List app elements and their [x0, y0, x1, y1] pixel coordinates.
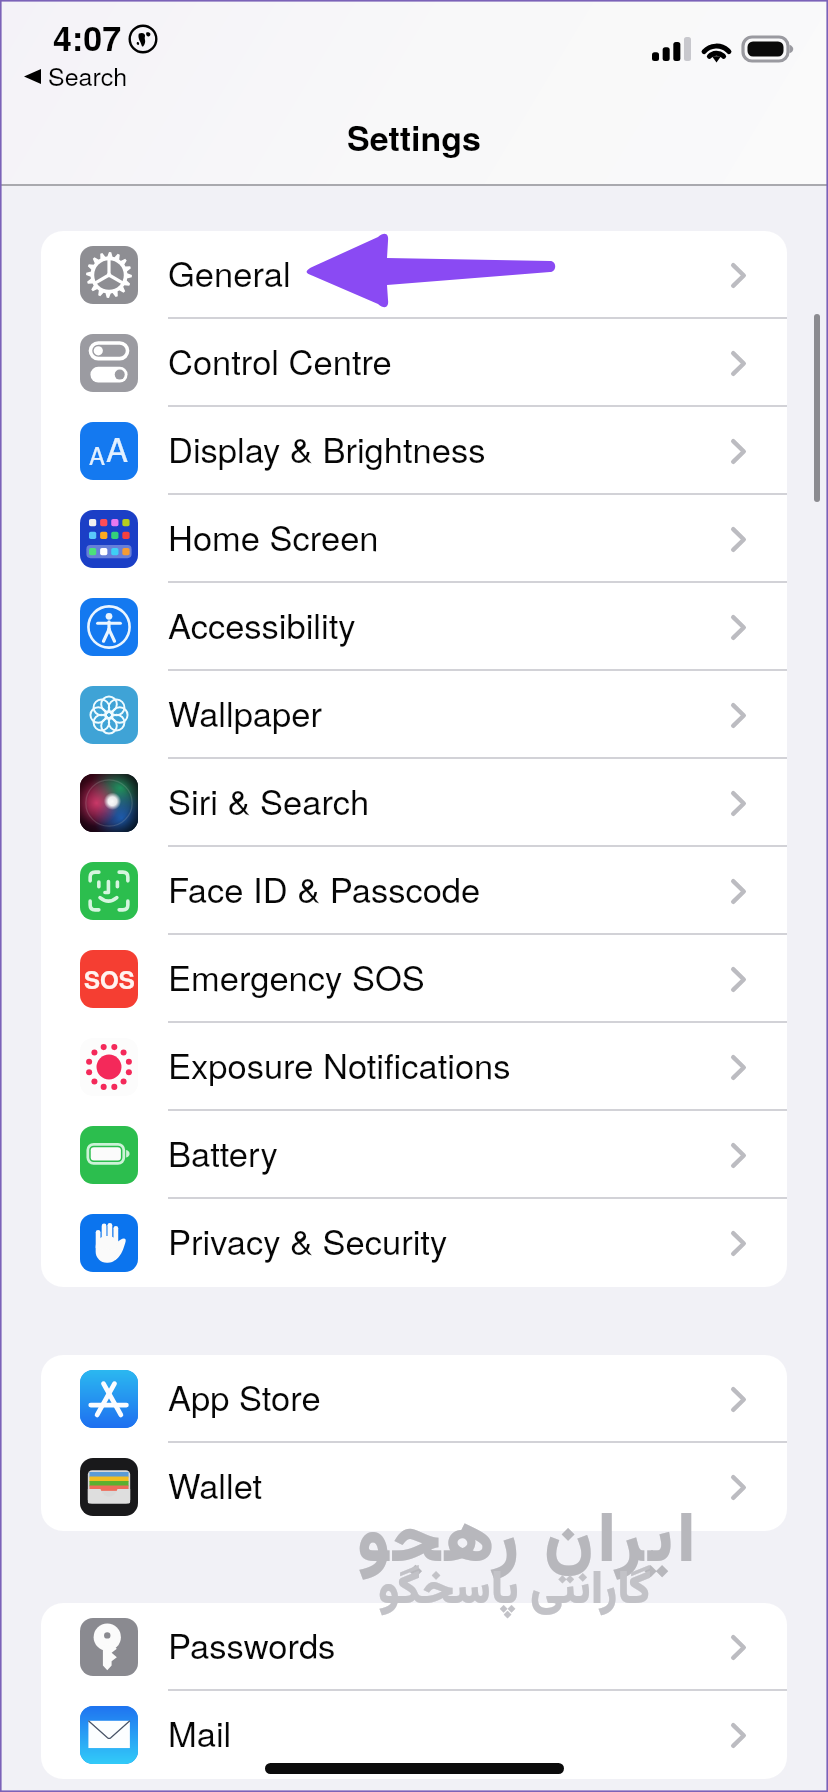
staticText: Passwords	[168, 1619, 336, 1668]
staticText: 4:07	[53, 13, 122, 62]
button[interactable]: Home Screen	[41, 495, 787, 583]
button[interactable]: Back to Search	[24, 57, 128, 93]
button[interactable]: App Store	[41, 1355, 787, 1443]
staticText: SOS	[84, 962, 135, 996]
staticText: Settings	[347, 113, 481, 162]
staticText: Accessibility	[168, 599, 356, 648]
staticText: Home Screen	[168, 511, 379, 560]
button[interactable]: SOS	[41, 935, 787, 1023]
staticText: Exposure Notifications	[168, 1039, 511, 1088]
button[interactable]: Passwords	[41, 1603, 787, 1691]
button[interactable]: Siri & Search	[41, 759, 787, 847]
staticText: Wallpaper	[168, 687, 322, 736]
button[interactable]: Control Centre	[41, 319, 787, 407]
staticText: Search	[48, 57, 128, 93]
staticText: App Store	[168, 1371, 321, 1420]
button[interactable]: Battery	[41, 1111, 787, 1199]
button[interactable]: Wallet	[41, 1443, 787, 1531]
button[interactable]: Exposure Notifications	[41, 1023, 787, 1111]
staticText: Battery	[168, 1127, 278, 1176]
button[interactable]: Privacy & Security	[41, 1199, 787, 1287]
staticText: Wallet	[168, 1459, 263, 1508]
staticText: Privacy & Security	[168, 1215, 448, 1264]
button[interactable]: Face ID & Passcode	[41, 847, 787, 935]
button[interactable]: Accessibility	[41, 583, 787, 671]
button[interactable]: Wallpaper	[41, 671, 787, 759]
staticText: A	[89, 437, 106, 471]
button[interactable]: General	[41, 231, 787, 319]
button[interactable]: A	[41, 407, 787, 495]
staticText: ایران رهجو	[357, 1489, 700, 1598]
staticText: گارانتی پاسخگو	[378, 1556, 652, 1628]
staticText: Siri & Search	[168, 775, 370, 824]
staticText: Emergency SOS	[168, 951, 425, 1000]
staticText: Display & Brightness	[168, 423, 486, 472]
staticText: Face ID & Passcode	[168, 863, 481, 912]
staticText: Mail	[168, 1707, 232, 1756]
staticText: A	[106, 424, 129, 471]
staticText: Control Centre	[168, 335, 392, 384]
staticText: General	[168, 247, 291, 296]
button[interactable]: Mail	[41, 1691, 787, 1779]
